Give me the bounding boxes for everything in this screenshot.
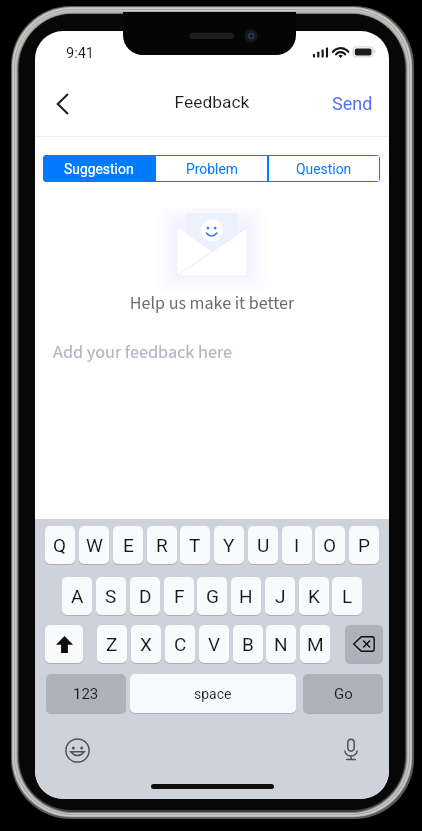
button[interactable]: H [231,577,261,615]
button[interactable]: W [79,526,109,564]
staticText: G [206,585,219,607]
button[interactable]: Go [303,674,383,713]
button[interactable]: E [113,526,143,564]
button[interactable]: V [199,625,229,663]
button[interactable]: Z [97,625,127,663]
staticText: K [308,585,320,607]
staticText: F [174,585,185,607]
staticText: Send [332,93,373,114]
button[interactable]: Emoji keyboard [57,730,97,770]
button[interactable]: B [233,625,263,663]
button[interactable]: F [164,577,194,615]
button[interactable]: J [265,577,295,615]
staticText: Feedback [35,92,389,118]
staticText: Problem [186,161,238,177]
button[interactable]: K [299,577,329,615]
button[interactable]: T [180,526,210,564]
staticText: N [274,633,288,655]
button[interactable]: P [349,526,379,564]
button[interactable]: R [147,526,177,564]
staticText: I [294,534,300,556]
button[interactable]: O [315,526,345,564]
button[interactable]: X [131,625,161,663]
button[interactable]: Back [44,85,80,123]
staticText: S [105,585,117,607]
staticText: O [323,534,337,556]
staticText: L [342,585,353,607]
staticText: D [139,585,152,607]
button[interactable]: M [300,625,330,663]
button[interactable]: U [248,526,278,564]
button[interactable]: Dictation [331,730,371,770]
staticText: Z [106,633,118,655]
button[interactable]: N [266,625,296,663]
staticText: Help us make it better [35,291,389,317]
button[interactable]: space [130,674,296,713]
staticText: A [71,585,84,607]
button[interactable]: Shift [45,625,83,663]
staticText: X [140,633,152,655]
staticText: 123 [73,685,99,703]
button[interactable]: S [96,577,126,615]
staticText: Q [53,534,67,556]
staticText: J [275,585,286,607]
button[interactable]: Problem [156,156,267,181]
button[interactable]: G [197,577,227,615]
button[interactable]: L [332,577,362,615]
button[interactable]: Backspace [345,625,383,663]
button[interactable]: Q [45,526,75,564]
staticText: Y [223,534,235,556]
button[interactable]: C [165,625,195,663]
staticText: 9:41 [66,45,94,62]
staticText: W [86,534,103,556]
staticText: Question [296,161,352,177]
button[interactable]: 123 [46,674,126,713]
staticText: Add your feedback here [53,339,233,365]
button[interactable]: Suggestion [43,155,155,182]
staticText: H [239,585,253,607]
staticText: space [194,686,232,702]
staticText: U [257,534,270,556]
button[interactable]: A [62,577,92,615]
button[interactable]: Y [214,526,244,564]
button[interactable]: D [130,577,160,615]
staticText: E [123,534,134,556]
button[interactable]: Send [326,88,378,118]
staticText: V [208,633,221,655]
staticText: P [358,534,370,556]
button[interactable]: I [282,526,312,564]
staticText: T [189,534,201,556]
button[interactable]: Question [269,156,379,181]
staticText: C [174,633,187,655]
staticText: M [307,633,324,655]
staticText: B [242,633,254,655]
staticText: Go [334,685,353,703]
staticText: R [156,534,168,556]
staticText: Suggestion [64,161,134,177]
